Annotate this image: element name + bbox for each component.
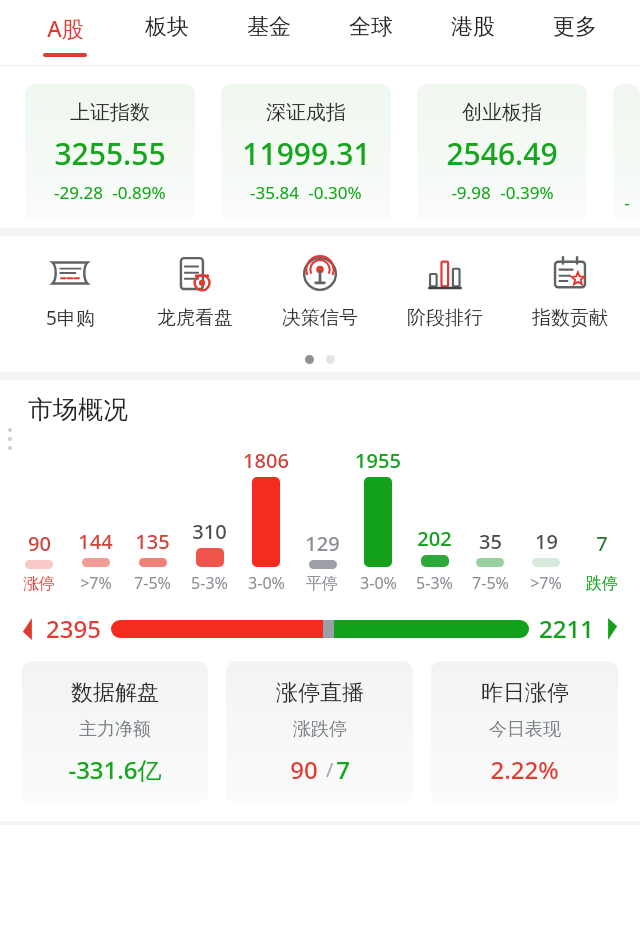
staticText: 跌停 [586,574,618,594]
staticText: 11999.31 [242,133,371,174]
button[interactable]: - [613,84,640,220]
staticText: 7-5% [472,572,509,594]
staticText: -29.28 [54,181,103,204]
button[interactable]: 数据解盘 [22,661,208,803]
other: Down [600,618,618,640]
button[interactable]: 创业板指 [417,84,587,220]
button[interactable]: 1806 [238,447,294,594]
button[interactable]: 市场概况 [28,394,128,425]
button[interactable]: 35 [462,447,518,594]
button[interactable]: 7 [574,449,630,594]
button[interactable]: 更多 [524,0,626,66]
staticText: 310 [192,518,227,545]
staticText: 19 [535,528,558,555]
staticText: 决策信号 [282,306,358,330]
staticText: -0.39% [500,181,554,204]
staticText: 指数贡献 [532,306,608,330]
button[interactable]: 昨日涨停 [431,661,618,803]
button[interactable]: 港股 [422,0,524,66]
staticText: 3255.55 [54,133,166,174]
staticText: 涨停直播 [276,679,364,707]
button[interactable]: A股 [14,0,116,66]
button[interactable]: 涨停直播 [226,661,413,803]
button[interactable]: 19 [518,447,574,594]
staticText: 90 [28,530,51,557]
other: Up [22,618,40,640]
staticText: 更多 [553,13,597,41]
button[interactable]: 深证成指 [221,84,391,220]
button[interactable]: 129 [294,449,350,594]
staticText: 129 [305,530,340,557]
staticText: 5-3% [416,572,453,594]
staticText: 5-3% [191,572,228,594]
staticText: 202 [417,525,452,552]
button[interactable]: 龙虎看盘 [132,236,257,346]
staticText: 上证指数 [70,100,150,125]
staticText: 5申购 [46,305,95,331]
staticText: 1806 [243,447,289,474]
staticText: 平停 [306,574,338,594]
button[interactable]: 决策信号 [257,236,382,346]
staticText: -0.89% [112,181,166,204]
button[interactable]: 202 [406,447,462,594]
staticText: 基金 [247,13,291,41]
button[interactable]: 90 [10,449,67,594]
button[interactable]: Expand panel [0,400,20,478]
staticText: 昨日涨停 [481,679,569,707]
staticText: 阶段排行 [407,306,483,330]
staticText: 3-0% [360,572,397,594]
staticText: 2.22% [490,753,559,786]
staticText: -35.84 [250,181,299,204]
staticText: 数据解盘 [71,679,159,707]
staticText: 龙虎看盘 [157,306,233,330]
staticText: 3-0% [248,572,285,594]
button[interactable]: 指数贡献 [507,236,632,346]
button[interactable]: 全球 [320,0,422,66]
button[interactable]: 144 [67,447,124,594]
staticText: 创业板指 [462,100,542,125]
staticText: / [318,756,336,783]
staticText: 2395 [46,612,101,645]
staticText: 涨跌停 [293,718,347,741]
button[interactable]: Up [22,612,618,645]
staticText: 1955 [355,447,401,474]
staticText: 全球 [349,13,393,41]
staticText: 板块 [145,13,189,41]
staticText: >7% [530,572,562,594]
staticText: 7 [596,530,608,557]
staticText: 主力净额 [79,718,151,741]
button[interactable]: 上证指数 [25,84,195,220]
button[interactable]: 阶段排行 [382,236,507,346]
staticText: 涨停 [23,574,55,594]
staticText: 144 [78,528,113,555]
staticText: >7% [80,572,112,594]
button[interactable]: 5申购 [8,236,132,346]
staticText: -331.6亿 [68,753,162,786]
button[interactable]: 310 [181,447,238,594]
staticText: 2211 [539,612,594,645]
staticText: 35 [479,528,502,555]
button[interactable]: 板块 [116,0,218,66]
button[interactable]: 基金 [218,0,320,66]
staticText: -0.30% [308,181,362,204]
button[interactable]: 1955 [350,447,406,594]
staticText: 90 [290,753,318,786]
staticText: 2546.49 [446,133,558,174]
staticText: 7 [336,753,350,786]
staticText: 135 [135,528,170,555]
button[interactable]: 135 [124,447,181,594]
staticText: 港股 [451,13,495,41]
staticText: A股 [47,13,84,43]
staticText: -9.98 [451,181,491,204]
staticText: 深证成指 [266,100,346,125]
staticText: - [624,191,630,214]
staticText: 今日表现 [489,718,561,741]
staticText: 7-5% [134,572,171,594]
